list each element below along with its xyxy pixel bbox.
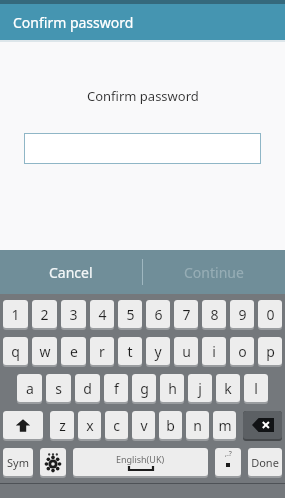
- button[interactable]: s: [46, 374, 71, 404]
- staticText: a: [26, 379, 34, 398]
- button[interactable]: 2: [32, 300, 57, 330]
- staticText: p: [266, 342, 275, 361]
- button[interactable]: y: [146, 337, 170, 367]
- staticText: e: [70, 342, 78, 361]
- staticText: b: [166, 416, 175, 435]
- button[interactable]: v: [132, 411, 155, 441]
- button[interactable]: t: [118, 337, 142, 367]
- staticText: 9: [238, 305, 247, 324]
- button[interactable]: l: [244, 374, 268, 404]
- staticText: 7: [182, 305, 191, 324]
- staticText: English(UK): [116, 453, 165, 465]
- staticText: o: [238, 342, 247, 361]
- button[interactable]: Space: [73, 448, 208, 478]
- staticText: Confirm password: [13, 13, 134, 32]
- staticText: s: [55, 379, 62, 398]
- staticText: Done: [251, 455, 279, 470]
- staticText: 0: [266, 305, 275, 324]
- button[interactable]: Shift: [3, 411, 43, 441]
- button[interactable]: Keyboard settings: [40, 448, 66, 478]
- button[interactable]: [24, 133, 261, 164]
- button[interactable]: Continue: [143, 250, 285, 294]
- button[interactable]: Sym: [3, 448, 33, 478]
- staticText: w: [39, 342, 51, 361]
- button[interactable]: w: [32, 337, 57, 367]
- button[interactable]: f: [104, 374, 128, 404]
- button[interactable]: a: [17, 374, 42, 404]
- staticText: l: [254, 379, 258, 398]
- button[interactable]: p: [258, 337, 282, 367]
- staticText: f: [114, 379, 119, 398]
- staticText: Continue: [184, 263, 244, 282]
- staticText: 3: [69, 305, 78, 324]
- button[interactable]: q: [3, 337, 28, 367]
- staticText: 4: [98, 305, 107, 324]
- staticText: h: [168, 379, 177, 398]
- button[interactable]: 9: [230, 300, 254, 330]
- staticText: x: [86, 416, 94, 435]
- button[interactable]: o: [230, 337, 254, 367]
- button[interactable]: 5: [118, 300, 142, 330]
- button[interactable]: c: [105, 411, 128, 441]
- staticText: Confirm password: [87, 87, 199, 105]
- staticText: t: [127, 342, 133, 361]
- button[interactable]: k: [216, 374, 240, 404]
- staticText: k: [224, 379, 232, 398]
- staticText: r: [99, 342, 105, 361]
- staticText: z: [59, 416, 66, 435]
- staticText: u: [182, 342, 191, 361]
- staticText: Cancel: [49, 263, 93, 282]
- button[interactable]: m: [213, 411, 236, 441]
- button[interactable]: Backspace: [243, 411, 282, 441]
- staticText: g: [140, 379, 149, 398]
- staticText: n: [193, 416, 202, 435]
- staticText: Sym: [7, 455, 29, 470]
- button[interactable]: 4: [90, 300, 114, 330]
- button[interactable]: u: [174, 337, 198, 367]
- staticText: c: [113, 416, 120, 435]
- staticText: 6: [154, 305, 163, 324]
- staticText: m: [218, 416, 232, 435]
- staticText: i: [212, 342, 216, 361]
- staticText: 5: [126, 305, 135, 324]
- button[interactable]: r: [90, 337, 114, 367]
- button[interactable]: 8: [202, 300, 226, 330]
- staticText: y: [154, 342, 162, 361]
- staticText: 2: [40, 305, 49, 324]
- button[interactable]: 1: [3, 300, 28, 330]
- button[interactable]: e: [61, 337, 86, 367]
- button[interactable]: Punctuation: [215, 448, 241, 478]
- button[interactable]: g: [132, 374, 156, 404]
- staticText: 8: [210, 305, 219, 324]
- staticText: v: [140, 416, 148, 435]
- button[interactable]: d: [75, 374, 100, 404]
- button[interactable]: z: [50, 411, 74, 441]
- button[interactable]: 0: [258, 300, 282, 330]
- button[interactable]: b: [159, 411, 182, 441]
- button[interactable]: h: [160, 374, 184, 404]
- staticText: q: [11, 342, 20, 361]
- button[interactable]: Cancel: [0, 250, 142, 294]
- button[interactable]: i: [202, 337, 226, 367]
- button[interactable]: 6: [146, 300, 170, 330]
- button[interactable]: j: [188, 374, 212, 404]
- button[interactable]: 3: [61, 300, 86, 330]
- staticText: 1: [11, 305, 20, 324]
- staticText: d: [83, 379, 92, 398]
- staticText: j: [198, 379, 202, 398]
- button[interactable]: x: [78, 411, 101, 441]
- button[interactable]: n: [186, 411, 209, 441]
- button[interactable]: Done: [248, 448, 282, 478]
- staticText: ,.?: [225, 449, 232, 459]
- button[interactable]: 7: [174, 300, 198, 330]
